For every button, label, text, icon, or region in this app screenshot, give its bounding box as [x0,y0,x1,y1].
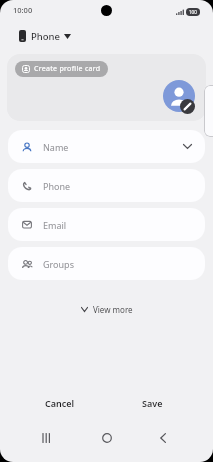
button[interactable]: Save [104,390,200,415]
staticText: Phone [43,180,71,192]
staticText: Email [43,219,67,231]
staticText: Save [142,397,163,409]
button[interactable]: Email [8,208,205,241]
button[interactable]: Phone [19,28,71,44]
staticText: 10:00 [13,5,33,15]
button[interactable] [151,426,175,449]
button[interactable] [95,426,119,449]
button[interactable]: Phone [8,169,205,202]
staticText: View more [93,304,133,315]
staticText: Groups [43,258,74,270]
staticText: Name [43,141,69,153]
button[interactable]: Groups [8,247,205,280]
button[interactable] [34,426,58,449]
staticText: Create profile card [34,64,101,74]
staticText: 100 [189,9,197,15]
button[interactable]: Name [8,130,205,163]
staticText: Phone [31,30,60,43]
button[interactable] [163,80,195,112]
button[interactable]: View more [0,300,213,318]
staticText: Cancel [45,397,75,409]
button[interactable]: Cancel [12,390,108,415]
button[interactable]: Create profile card [15,61,108,77]
